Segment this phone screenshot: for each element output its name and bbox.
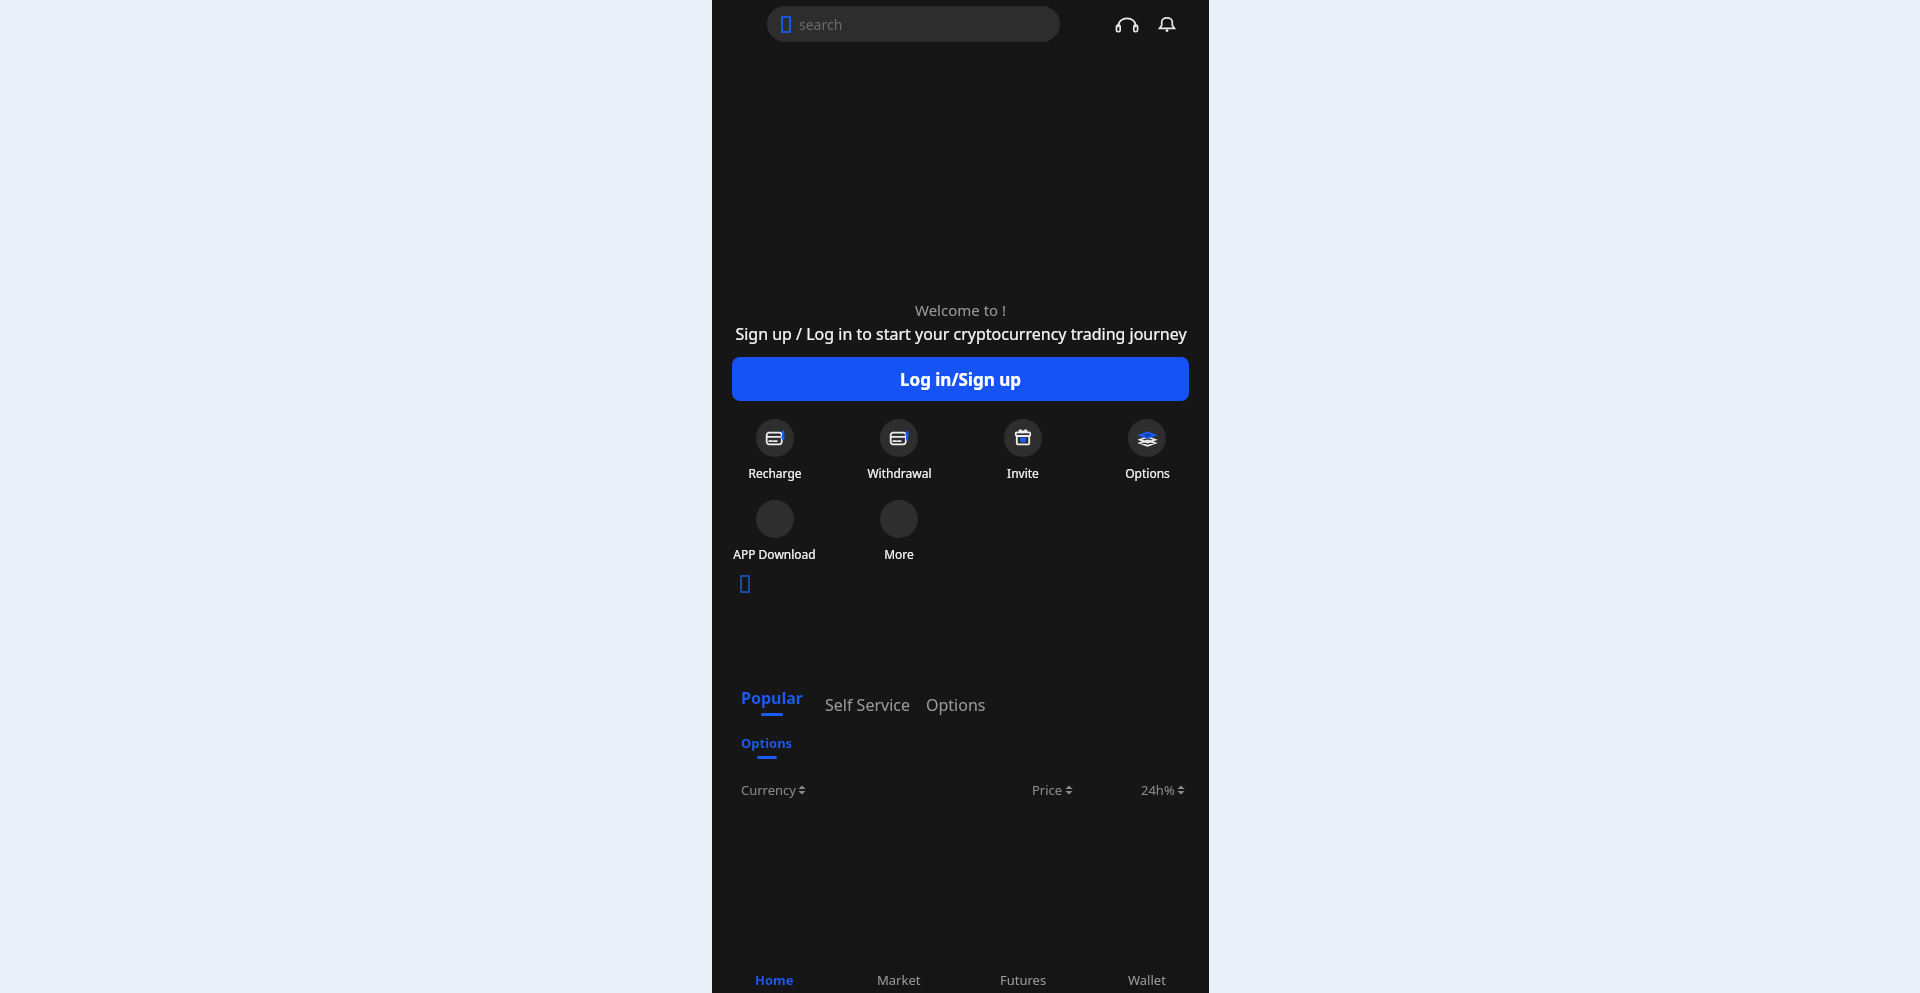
button[interactable]: search <box>767 6 1060 42</box>
button[interactable]: Options <box>741 734 793 759</box>
staticText: Options <box>926 694 986 716</box>
button[interactable]: Withdrawal <box>837 419 961 481</box>
button[interactable]: Invite <box>961 419 1085 481</box>
staticText: Home <box>755 971 794 989</box>
staticText: Invite <box>1007 465 1039 481</box>
button[interactable]: APP Download <box>712 500 837 562</box>
staticText: Price <box>1032 781 1063 799</box>
button[interactable]: Recharge <box>712 419 837 481</box>
button[interactable]: Notifications <box>1150 7 1184 41</box>
staticText: Wallet <box>1128 971 1166 989</box>
button[interactable]: Futures <box>961 951 1085 993</box>
button[interactable]: Popular <box>741 687 803 716</box>
staticText: More <box>884 546 914 562</box>
button[interactable]: Wallet <box>1085 951 1209 993</box>
button[interactable]: Customer support <box>1110 7 1144 41</box>
button[interactable]: Market <box>837 951 961 993</box>
button[interactable]: Log in/Sign up <box>732 357 1189 401</box>
staticText: Market <box>877 971 921 989</box>
staticText: Options <box>1125 465 1170 481</box>
button[interactable]: 24h% <box>1141 781 1185 799</box>
staticText: Log in/Sign up <box>900 368 1021 391</box>
staticText: Options <box>741 734 793 752</box>
staticText: Self Service <box>825 694 910 716</box>
button[interactable]: More <box>837 500 961 562</box>
button[interactable]: Options <box>926 694 986 716</box>
staticText: Withdrawal <box>867 465 932 481</box>
staticText: search <box>799 15 843 34</box>
button[interactable]: Self Service <box>825 694 910 716</box>
staticText: Welcome to ! <box>915 300 1007 320</box>
button[interactable]: Currency <box>741 781 806 799</box>
button[interactable]: Price <box>1032 781 1073 799</box>
staticText: Recharge <box>748 465 802 481</box>
staticText: Sign up / Log in to start your cryptocur… <box>735 323 1187 345</box>
button[interactable]: Options <box>1085 419 1209 481</box>
button[interactable]: Home <box>712 951 837 993</box>
staticText: APP Download <box>733 546 816 562</box>
staticText: Futures <box>1000 971 1047 989</box>
staticText: 24h% <box>1141 781 1175 799</box>
staticText: Currency <box>741 781 796 799</box>
staticText: Popular <box>741 687 803 709</box>
